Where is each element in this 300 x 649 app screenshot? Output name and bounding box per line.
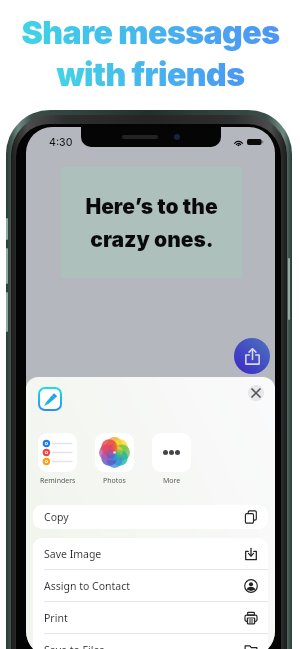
staticText: Copy [44, 510, 69, 524]
button[interactable]: Save Image [33, 538, 268, 569]
staticText: crazy ones. [90, 227, 214, 252]
button[interactable]: Close [248, 385, 264, 401]
staticText: Here’s to the [85, 194, 218, 219]
staticText: 4:30 [49, 136, 73, 149]
staticText: Save to Files [44, 643, 105, 649]
staticText: with friends [56, 55, 245, 94]
button[interactable]: Reminders [38, 433, 77, 486]
button[interactable]: Copy [33, 505, 268, 529]
button[interactable]: Print [33, 602, 268, 633]
button[interactable]: Assign to Contact [33, 570, 268, 601]
staticText: Assign to Contact [44, 579, 131, 593]
button[interactable]: More [152, 433, 191, 486]
staticText: Share messages [21, 13, 280, 52]
button[interactable]: Save to Files [33, 634, 268, 649]
staticText: Print [44, 611, 68, 625]
button[interactable]: Share [234, 338, 270, 374]
button[interactable]: Markup [40, 389, 60, 409]
staticText: More [163, 476, 181, 486]
button[interactable]: Photos [95, 433, 134, 486]
staticText: Photos [103, 476, 126, 486]
staticText: Save Image [44, 547, 102, 561]
staticText: Reminders [40, 476, 76, 486]
